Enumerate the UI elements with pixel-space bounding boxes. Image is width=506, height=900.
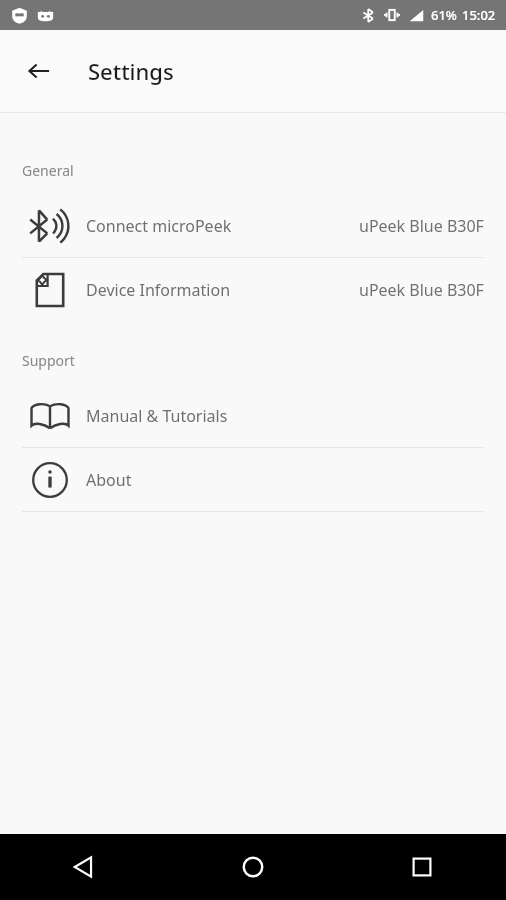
button[interactable]: Manual & Tutorials bbox=[0, 384, 506, 447]
button[interactable]: Recent apps bbox=[337, 834, 506, 900]
button[interactable]: Connect microPeek bbox=[0, 194, 506, 257]
staticText: Support bbox=[22, 351, 75, 370]
button[interactable]: Back bbox=[0, 834, 168, 900]
staticText: uPeek Blue B30F bbox=[359, 279, 484, 301]
button[interactable]: About bbox=[0, 448, 506, 511]
staticText: Device Information bbox=[86, 279, 231, 301]
staticText: 61% bbox=[431, 6, 457, 24]
staticText: 15:02 bbox=[462, 6, 496, 24]
staticText: Manual & Tutorials bbox=[86, 405, 228, 427]
button[interactable]: Device Information bbox=[0, 258, 506, 321]
button[interactable]: Back bbox=[14, 46, 64, 96]
staticText: General bbox=[22, 161, 74, 180]
button[interactable]: Home bbox=[168, 834, 337, 900]
staticText: Connect microPeek bbox=[86, 215, 232, 237]
staticText: uPeek Blue B30F bbox=[359, 215, 484, 237]
staticText: Settings bbox=[88, 56, 174, 86]
staticText: About bbox=[86, 469, 132, 491]
